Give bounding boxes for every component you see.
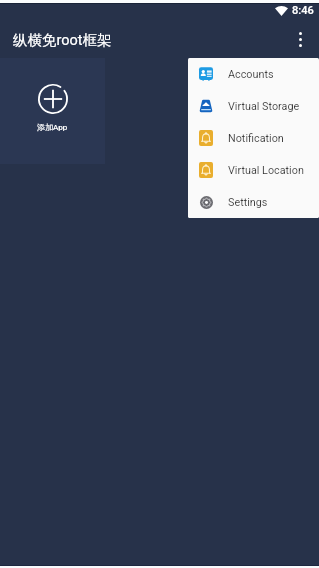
staticText: Virtual Location [228,164,304,177]
staticText: Settings [228,196,268,209]
button[interactable]: Settings [188,186,319,218]
staticText: 添加App [37,122,68,132]
button[interactable]: Accounts [188,58,319,90]
staticText: Accounts [228,68,274,81]
button[interactable]: Virtual Storage [188,90,319,122]
button[interactable]: 添加App [0,58,105,164]
staticText: 纵横免root框架 [13,31,112,49]
staticText: Notification [228,132,284,145]
button[interactable]: More options [282,21,319,58]
button[interactable]: Virtual Location [188,154,319,186]
staticText: 8:46 [292,4,314,17]
button[interactable]: Notification [188,122,319,154]
staticText: Virtual Storage [228,100,300,113]
